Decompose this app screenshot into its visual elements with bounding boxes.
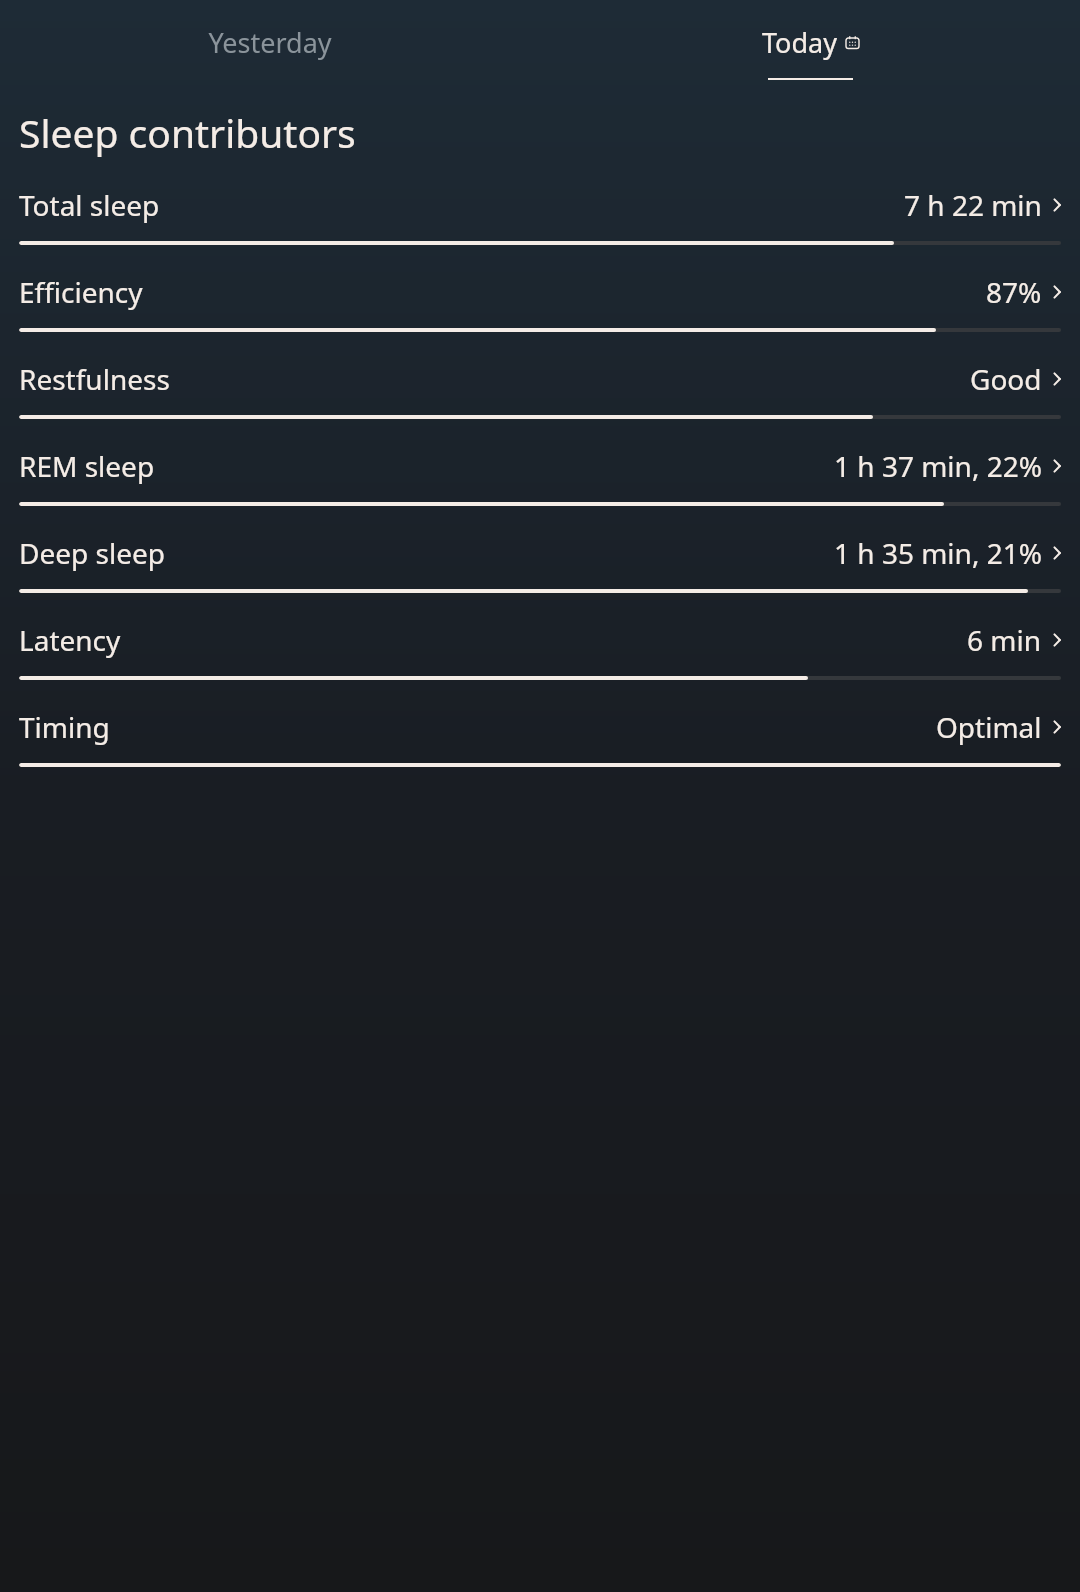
button[interactable]: Total sleep [0,186,1080,245]
staticText: Today [762,24,837,61]
staticText: Optimal [936,708,1042,746]
staticText: Timing [19,708,110,746]
staticText: Sleep contributors [19,106,356,159]
staticText: Deep sleep [19,534,165,572]
button[interactable]: Deep sleep [0,534,1080,593]
staticText: 1 h 35 min, 21% [834,534,1042,572]
button[interactable]: Yesterday [0,18,540,67]
staticText: Latency [19,621,121,659]
button[interactable]: Efficiency [0,273,1080,332]
staticText: Good [970,360,1042,398]
other: Calendar [846,36,859,49]
button[interactable]: Today [540,18,1080,80]
button[interactable]: REM sleep [0,447,1080,506]
button[interactable]: Latency [0,621,1080,680]
button[interactable]: Restfulness [0,360,1080,419]
staticText: Yesterday [208,24,332,61]
staticText: 7 h 22 min [904,186,1042,224]
staticText: 87% [986,273,1042,311]
button[interactable]: Timing [0,708,1080,767]
staticText: Efficiency [19,273,143,311]
staticText: Total sleep [19,186,160,224]
staticText: REM sleep [19,447,155,485]
staticText: 6 min [967,621,1042,659]
staticText: Restfulness [19,360,170,398]
staticText: 1 h 37 min, 22% [834,447,1042,485]
